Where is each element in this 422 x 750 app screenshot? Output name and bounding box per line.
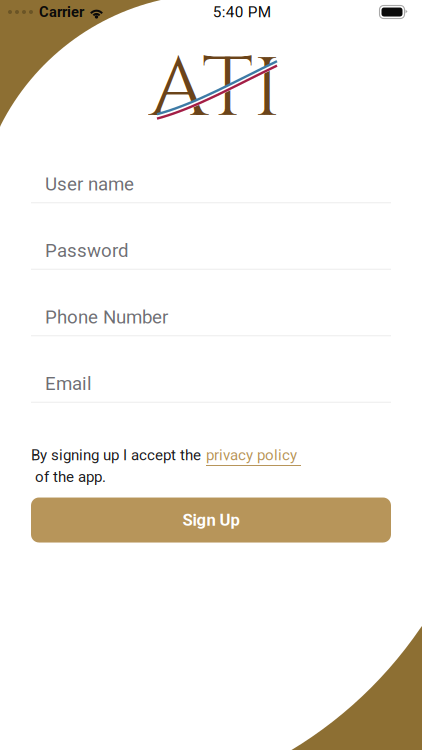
button[interactable]: Phone Number bbox=[31, 306, 391, 336]
button[interactable]: Password bbox=[31, 240, 391, 270]
staticText: Carrier bbox=[39, 3, 84, 21]
button[interactable]: privacy policy bbox=[201, 446, 301, 466]
staticText: Phone Number bbox=[45, 306, 168, 328]
staticText: By signing up I accept the bbox=[31, 446, 201, 464]
staticText: Sign Up bbox=[182, 510, 239, 530]
staticText: ATI bbox=[149, 34, 281, 146]
staticText: of the app. bbox=[31, 468, 106, 486]
button[interactable]: Sign Up bbox=[31, 497, 391, 542]
staticText: 5:40 PM bbox=[213, 3, 271, 21]
staticText: User name bbox=[45, 173, 134, 195]
staticText: privacy policy bbox=[206, 446, 297, 464]
button[interactable]: Email bbox=[31, 373, 391, 403]
button[interactable]: User name bbox=[31, 173, 391, 203]
staticText: Email bbox=[45, 373, 92, 395]
staticText: Password bbox=[45, 240, 129, 262]
